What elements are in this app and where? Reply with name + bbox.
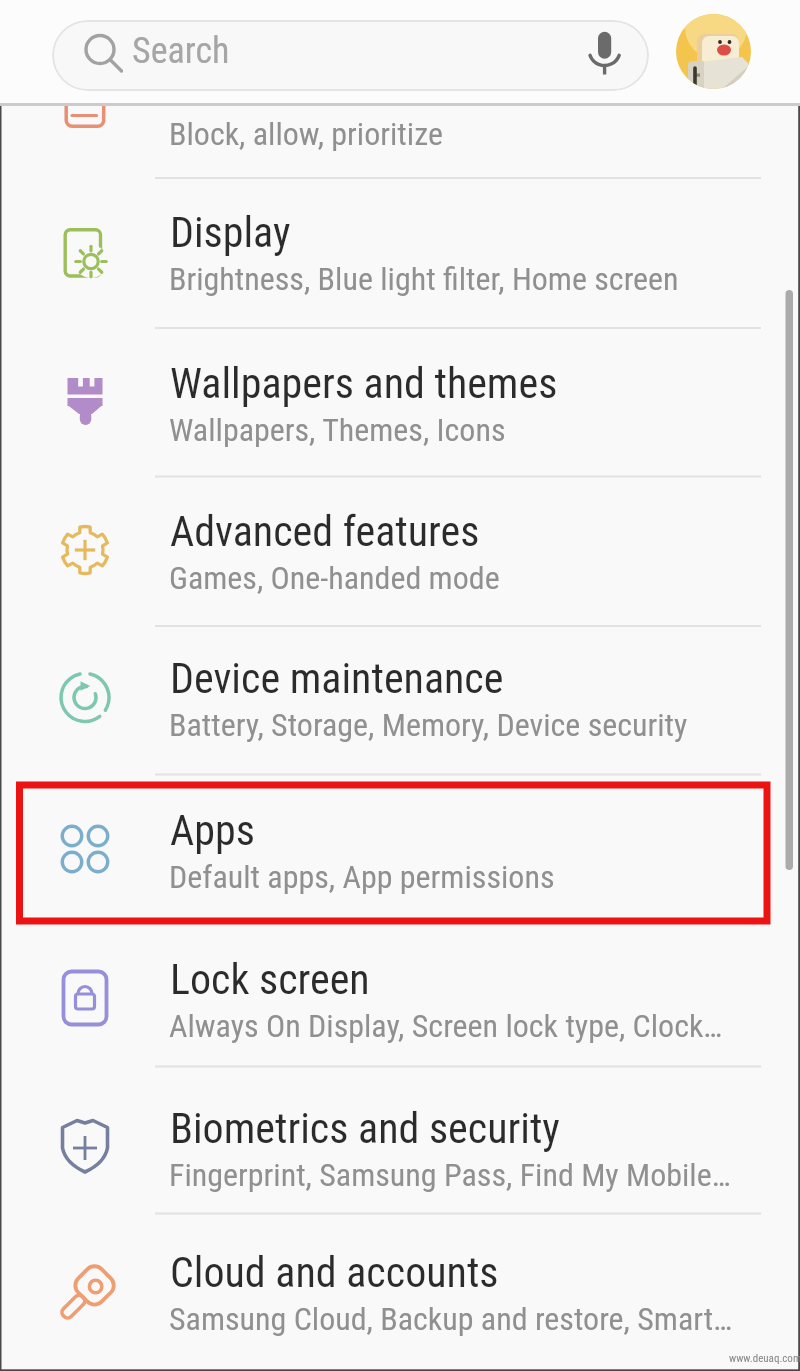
- button[interactable]: Biometrics and security: [0, 1070, 800, 1219]
- staticText: Games, One-handed mode: [169, 559, 500, 597]
- staticText: Wallpapers and themes: [170, 359, 558, 408]
- staticText: Advanced features: [170, 507, 480, 556]
- button[interactable]: Device maintenance: [0, 620, 800, 769]
- staticText: Samsung Cloud, Backup and restore, Smart…: [169, 1300, 733, 1338]
- staticText: Biometrics and security: [170, 1104, 560, 1153]
- button[interactable]: Lock screen: [0, 921, 800, 1070]
- button[interactable]: Notifications: [0, 29, 800, 178]
- staticText: Device maintenance: [170, 654, 504, 703]
- button[interactable]: Advanced features: [0, 473, 800, 622]
- staticText: Default apps, App permissions: [169, 858, 555, 896]
- staticText: Battery, Storage, Memory, Device securit…: [169, 706, 688, 744]
- staticText: Cloud and accounts: [170, 1248, 499, 1297]
- staticText: Lock screen: [170, 955, 370, 1004]
- staticText: www.deuaq.com: [729, 1352, 800, 1365]
- button[interactable]: [676, 14, 751, 89]
- button[interactable]: [52, 20, 649, 91]
- staticText: Display: [170, 208, 291, 257]
- staticText: Always On Display, Screen lock type, Clo…: [169, 1007, 723, 1045]
- staticText: Block, allow, prioritize: [169, 115, 443, 153]
- staticText: Apps: [170, 806, 255, 855]
- button[interactable]: Apps: [0, 772, 800, 921]
- button[interactable]: Cloud and accounts: [0, 1214, 800, 1363]
- button[interactable]: Display: [0, 174, 800, 323]
- staticText: Fingerprint, Samsung Pass, Find My Mobil…: [169, 1156, 731, 1194]
- staticText: Search: [132, 30, 230, 72]
- button[interactable]: Wallpapers and themes: [0, 325, 800, 474]
- staticText: Wallpapers, Themes, Icons: [169, 411, 506, 449]
- button[interactable]: [582, 25, 628, 85]
- staticText: Brightness, Blue light filter, Home scre…: [169, 260, 679, 298]
- staticText: Notifications: [170, 63, 382, 112]
